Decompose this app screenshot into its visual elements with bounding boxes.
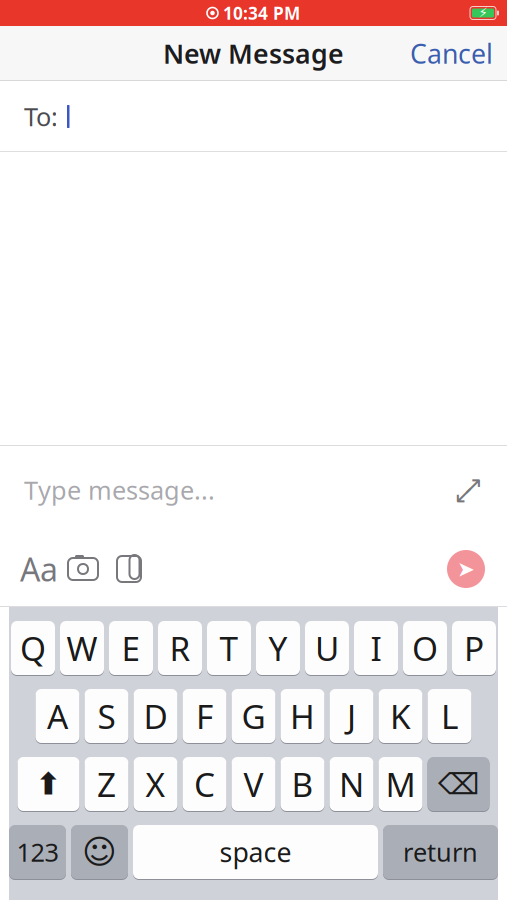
button[interactable]: S <box>84 688 128 744</box>
staticText: I <box>370 626 381 670</box>
staticText: P <box>464 626 484 670</box>
button[interactable]: space <box>133 824 378 880</box>
button[interactable]: B <box>280 756 324 812</box>
staticText: 123 <box>16 835 58 869</box>
staticText: E <box>121 626 140 670</box>
staticText: space <box>219 834 291 870</box>
button[interactable]: I <box>354 620 398 676</box>
staticText: ↗ <box>462 471 483 500</box>
button[interactable]: Y <box>256 620 300 676</box>
button[interactable]: C <box>182 756 226 812</box>
staticText: ⬆ <box>35 767 61 801</box>
button[interactable]: O <box>403 620 447 676</box>
button[interactable]: W <box>60 620 104 676</box>
button[interactable]: Q <box>11 620 55 676</box>
staticText: ➤ <box>457 557 475 581</box>
staticText: B <box>291 762 313 806</box>
staticText: F <box>196 694 213 738</box>
staticText: ⚡︎ <box>478 5 487 20</box>
button[interactable]: K <box>378 688 422 744</box>
staticText: To: <box>24 100 58 133</box>
staticText: 10:34 PM <box>223 1 300 24</box>
button[interactable]: J <box>329 688 373 744</box>
staticText: Y <box>268 626 287 670</box>
button[interactable]: T <box>207 620 251 676</box>
button[interactable]: Attach file <box>106 549 152 589</box>
button[interactable]: H <box>280 688 324 744</box>
button[interactable]: ⌫ <box>427 756 489 812</box>
staticText: O <box>412 626 438 670</box>
staticText: R <box>169 626 190 670</box>
staticText: W <box>66 626 97 670</box>
button[interactable]: Camera <box>60 549 106 589</box>
button[interactable]: 123 <box>9 824 66 880</box>
staticText: H <box>290 694 315 738</box>
staticText: Cancel <box>410 36 493 71</box>
staticText: ☺ <box>82 833 117 871</box>
button[interactable]: M <box>378 756 422 812</box>
button[interactable]: G <box>231 688 275 744</box>
button[interactable]: Expand <box>447 473 489 507</box>
button[interactable]: Text format <box>18 549 60 589</box>
button[interactable]: ⬆ <box>17 756 79 812</box>
staticText: X <box>145 762 165 806</box>
button[interactable]: L <box>427 688 471 744</box>
staticText: N <box>339 762 364 806</box>
staticText: Type message... <box>24 473 215 507</box>
staticText: ↙ <box>453 480 474 509</box>
staticText: C <box>194 762 215 806</box>
button[interactable]: X <box>133 756 177 812</box>
staticText: A <box>47 694 68 738</box>
staticText: K <box>390 694 411 738</box>
button[interactable]: ☺ <box>71 824 128 880</box>
button[interactable]: P <box>452 620 496 676</box>
staticText: G <box>241 694 265 738</box>
staticText: T <box>219 626 238 670</box>
button[interactable]: V <box>231 756 275 812</box>
staticText: J <box>347 694 356 738</box>
staticText: Z <box>97 762 116 806</box>
button[interactable]: R <box>158 620 202 676</box>
button[interactable]: return <box>383 824 498 880</box>
button[interactable]: Z <box>84 756 128 812</box>
button[interactable]: E <box>109 620 153 676</box>
staticText: V <box>243 762 263 806</box>
button[interactable]: To: <box>0 81 507 152</box>
staticText: M <box>385 762 415 806</box>
staticText: New Message <box>163 36 344 71</box>
button[interactable]: F <box>182 688 226 744</box>
button[interactable]: Send <box>443 550 489 588</box>
staticText: U <box>315 626 339 670</box>
button[interactable]: A <box>35 688 79 744</box>
staticText: ⌫ <box>438 767 479 801</box>
button[interactable]: D <box>133 688 177 744</box>
staticText: Q <box>20 626 46 670</box>
staticText: S <box>97 694 115 738</box>
button[interactable]: U <box>305 620 349 676</box>
staticText: D <box>143 694 167 738</box>
staticText: return <box>403 835 478 869</box>
staticText: L <box>441 694 458 738</box>
button[interactable]: Cancel <box>396 24 507 83</box>
button[interactable]: N <box>329 756 373 812</box>
staticText: Aa <box>20 548 58 590</box>
